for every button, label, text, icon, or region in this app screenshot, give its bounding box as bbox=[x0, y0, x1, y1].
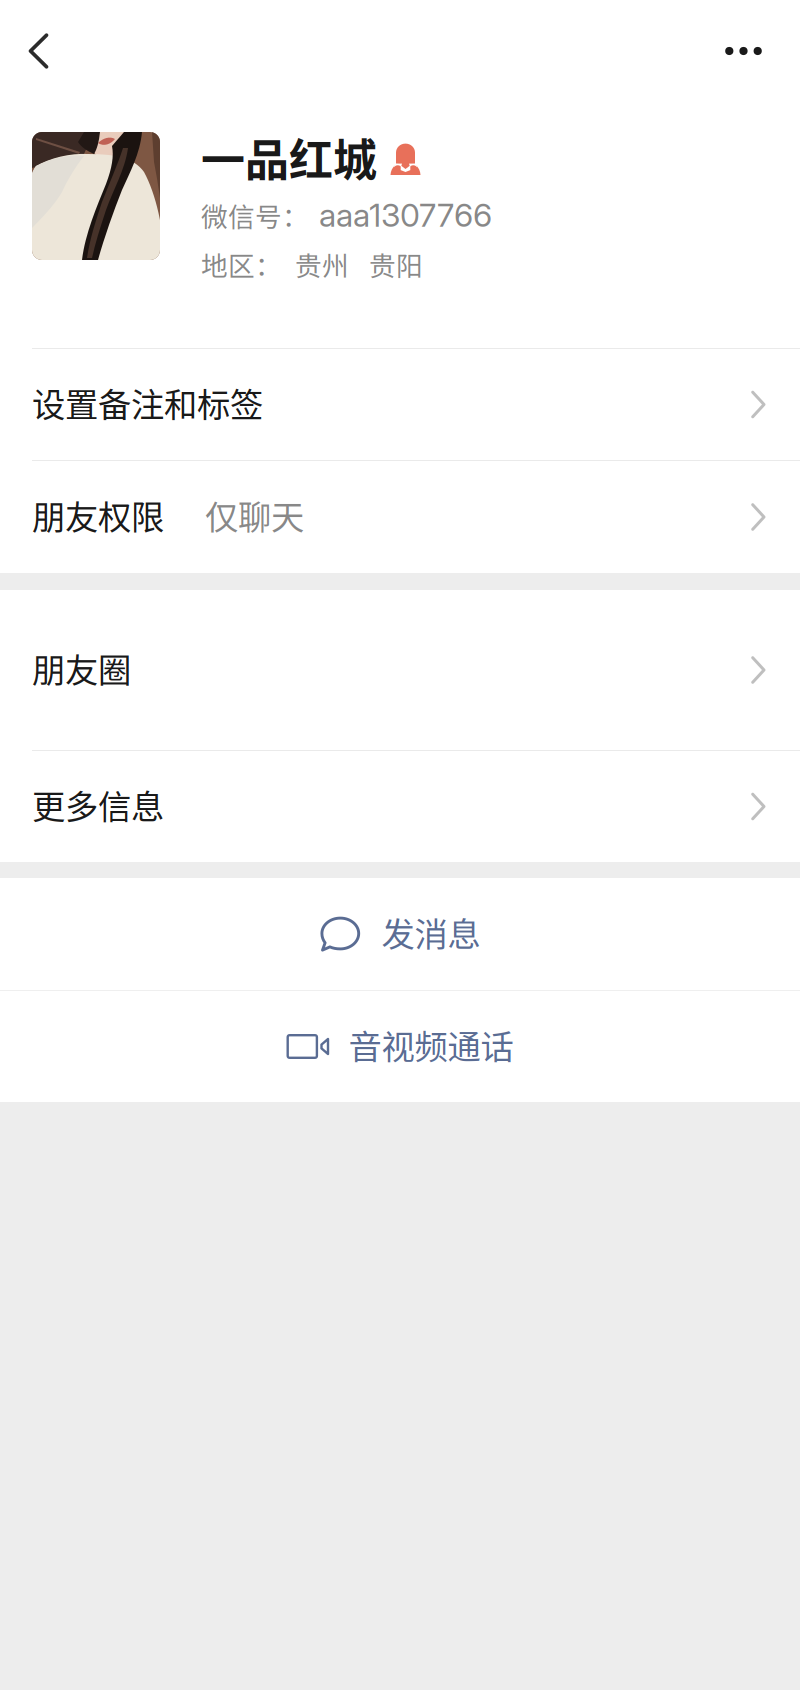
button[interactable]: 朋友权限 bbox=[0, 461, 800, 573]
button[interactable]: 发消息 bbox=[0, 878, 800, 990]
staticText: 更多信息 bbox=[32, 780, 164, 829]
staticText: 朋友圈 bbox=[32, 644, 131, 692]
staticText: 发消息 bbox=[381, 908, 480, 956]
button[interactable]: 设置备注和标签 bbox=[0, 349, 800, 460]
staticText: 地区： bbox=[201, 245, 282, 283]
button[interactable]: 音视频通话 bbox=[0, 991, 800, 1102]
staticText: 仅聊天 bbox=[205, 491, 304, 539]
staticText: 设置备注和标签 bbox=[32, 378, 263, 427]
staticText: 贵州 bbox=[295, 245, 349, 283]
staticText: 音视频通话 bbox=[348, 1020, 513, 1069]
button[interactable]: 朋友圈 bbox=[0, 590, 800, 750]
staticText: 朋友权限 bbox=[32, 491, 164, 539]
staticText: 贵阳 bbox=[369, 245, 423, 283]
button[interactable]: 更多信息 bbox=[0, 751, 800, 862]
button[interactable]: Back bbox=[0, 0, 79, 102]
staticText: 一品红城 bbox=[201, 125, 377, 189]
button[interactable]: More options bbox=[695, 0, 800, 102]
staticText: aaa1307766 bbox=[319, 196, 492, 234]
staticText: 微信号： bbox=[201, 196, 309, 234]
